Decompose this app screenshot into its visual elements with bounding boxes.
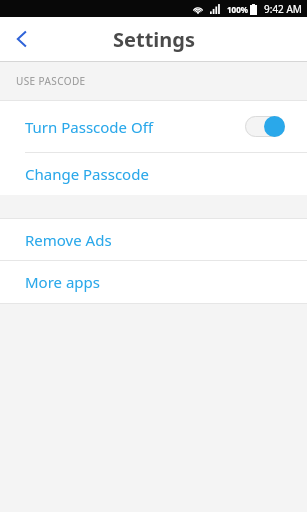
button[interactable]: More apps [0, 261, 307, 303]
staticText: More apps [25, 272, 100, 292]
staticText: Remove Ads [25, 230, 112, 250]
staticText: Turn Passcode Off [25, 117, 245, 137]
button[interactable]: Change Passcode [0, 153, 307, 195]
button[interactable]: Remove Ads [0, 219, 307, 260]
staticText: Settings [113, 26, 195, 53]
button[interactable]: Turn Passcode Off [0, 101, 307, 152]
staticText: USE PASCODE [16, 74, 86, 88]
staticText: 9:42 AM [264, 2, 302, 16]
button[interactable]: Back [0, 17, 44, 61]
staticText: 100% [227, 4, 248, 15]
staticText: Change Passcode [25, 164, 149, 184]
button[interactable]: Toggle passcode [245, 116, 285, 137]
